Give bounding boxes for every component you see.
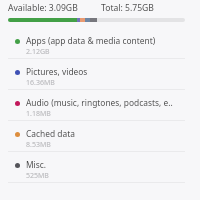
staticText: Apps (app data & media content) [26,35,156,46]
staticText: 2.12GB [26,47,50,57]
staticText: 1.18MB [26,109,51,119]
staticText: 8.53MB [26,140,51,150]
button[interactable]: Misc. [0,152,200,183]
button[interactable]: Cached data [0,121,200,152]
staticText: Misc. [26,159,47,170]
staticText: 16.36MB [26,78,55,88]
button[interactable]: Audio (music, ringtones, podcasts, e.. [0,90,200,121]
staticText: 525MB [26,171,49,181]
staticText: Total: 5.75GB [101,2,154,14]
button[interactable]: Apps (app data & media content) [0,28,200,59]
staticText: Cached data [26,128,75,139]
staticText: Available: 3.09GB [8,2,78,14]
staticText: Pictures, videos [26,66,88,77]
button[interactable]: Pictures, videos [0,59,200,90]
staticText: Audio (music, ringtones, podcasts, e.. [26,97,173,108]
